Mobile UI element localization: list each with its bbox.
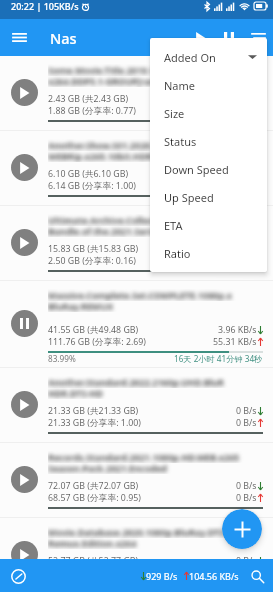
button[interactable]: Resume — [11, 310, 38, 337]
staticText: 21.33 GB (共21.33 GB) — [48, 405, 139, 417]
button[interactable]: Open navigation drawer — [0, 19, 39, 56]
staticText: 0 B/s — [236, 555, 257, 567]
staticText: 41.55 GB (共49.48 GB) — [48, 324, 139, 336]
staticText: Season.Pack.2021.Encoded — [48, 462, 168, 474]
button[interactable]: Pause — [11, 466, 38, 493]
staticText: 0 B/s — [236, 492, 257, 504]
button[interactable]: Search — [246, 565, 268, 587]
staticText: Remux.Edition.x264 — [48, 537, 137, 549]
staticText: Records.Standard.2021.1080p.HD.WEB.x265 — [48, 451, 240, 463]
staticText: Size — [164, 106, 185, 121]
staticText: Bundle.of.the.2021.Series — [48, 225, 162, 237]
staticText: Added On — [164, 50, 216, 65]
staticText: 6.14 GB (分享率: 1.00) — [48, 180, 136, 192]
staticText: 68.57 GB (分享率: 0.95) — [48, 492, 141, 504]
staticText: 15.83 GB (共15.83 GB) — [48, 243, 139, 255]
button[interactable]: Down Speed — [150, 155, 267, 183]
staticText: 6.10 GB (共6.10 GB) — [48, 168, 129, 180]
staticText: x264.DDP5.1-GROUP[rartv] — [48, 75, 166, 87]
staticText: 52.77 GB (共52.77 GB) — [48, 555, 139, 567]
staticText: BluRay.REMUX — [48, 300, 114, 312]
button[interactable]: Pause — [0, 56, 273, 130]
staticText: 1.88 GB (分享率: 0.77) — [48, 105, 136, 117]
staticText: 2.43 GB (共2.43 GB) — [48, 93, 129, 105]
staticText: Name — [164, 78, 196, 93]
button[interactable]: Added On — [150, 43, 267, 71]
button[interactable]: Pause — [0, 368, 273, 442]
button[interactable]: Add torrent — [222, 509, 262, 549]
staticText: Ratio — [164, 246, 191, 261]
button[interactable]: Alternative speed limits — [7, 565, 29, 587]
button[interactable]: Resume — [0, 281, 273, 367]
staticText: 0 B/s — [236, 480, 257, 492]
staticText: Some.Movie.Title.2019.1080p.WEB-DL — [48, 64, 213, 76]
staticText: Down Speed — [164, 162, 229, 177]
button[interactable]: Resume all — [185, 19, 215, 56]
button[interactable]: Pause — [11, 154, 38, 181]
staticText: 2.50 GB (分享率: 0.16) — [48, 255, 136, 267]
staticText: Ultimate.Archive.Collection.Pack — [48, 214, 195, 226]
staticText: 3.96 KB/s — [218, 324, 257, 336]
staticText: Another.Show.S01.2020.2160p.AMZN — [48, 139, 210, 151]
staticText: ETA — [164, 218, 183, 233]
button[interactable]: Pause — [0, 131, 273, 205]
staticText: 0 B/s — [236, 567, 257, 579]
button[interactable]: Pause — [0, 443, 273, 517]
staticText: 0 B/s — [236, 417, 257, 429]
staticText: Up Speed — [164, 190, 214, 205]
button[interactable]: Pause — [0, 518, 273, 592]
button[interactable]: Pause — [11, 391, 38, 418]
button[interactable]: Ratio — [150, 239, 267, 267]
staticText: Movie.Database.2020.1080p.BluRay.DTS — [48, 526, 224, 538]
button[interactable]: Name — [150, 71, 267, 99]
button[interactable]: Pause all — [215, 19, 243, 56]
staticText: HDR.DTS-HD — [48, 387, 103, 399]
staticText: 104.56 KB/s — [189, 570, 239, 582]
staticText: 72.07 GB (共72.07 GB) — [48, 480, 139, 492]
staticText: 16天 2小时 41分钟 34秒 — [174, 353, 263, 364]
staticText: 20:22 | 105KB/s — [11, 0, 79, 12]
staticText: 21.33 GB (分享率: 1.00) — [48, 417, 141, 429]
button[interactable]: Sort — [243, 19, 273, 56]
staticText: WEBRip.x265.10bit.HDR-TEAM — [48, 150, 180, 162]
button[interactable]: Status — [150, 127, 267, 155]
button[interactable]: Pause — [11, 541, 38, 568]
staticText: 55.31 KB/s — [213, 336, 257, 348]
staticText: Massive.Complete.Set.COMPLETE.1080p.x — [48, 289, 232, 301]
staticText: Nas — [50, 28, 77, 48]
staticText: 0 B/s — [236, 405, 257, 417]
button[interactable]: Up Speed — [150, 183, 267, 211]
button[interactable]: Pause — [11, 229, 38, 256]
button[interactable]: ETA — [150, 211, 267, 239]
staticText: 83.99% — [48, 353, 76, 364]
staticText: Another.Standard.2022.2160p.UHD.BluR — [48, 376, 224, 388]
button[interactable]: Pause — [11, 79, 38, 106]
button[interactable]: Pause — [0, 206, 273, 280]
staticText: 111.76 GB (分享率: 2.69) — [48, 336, 146, 348]
staticText: Status — [164, 134, 197, 149]
staticText: 929 B/s — [146, 570, 178, 582]
button[interactable]: Size — [150, 99, 267, 127]
